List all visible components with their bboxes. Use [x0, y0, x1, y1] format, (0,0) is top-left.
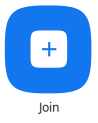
button[interactable]: Join — [0, 99, 98, 115]
staticText: Join — [39, 99, 59, 115]
button[interactable]: Join — [5, 5, 91, 93]
